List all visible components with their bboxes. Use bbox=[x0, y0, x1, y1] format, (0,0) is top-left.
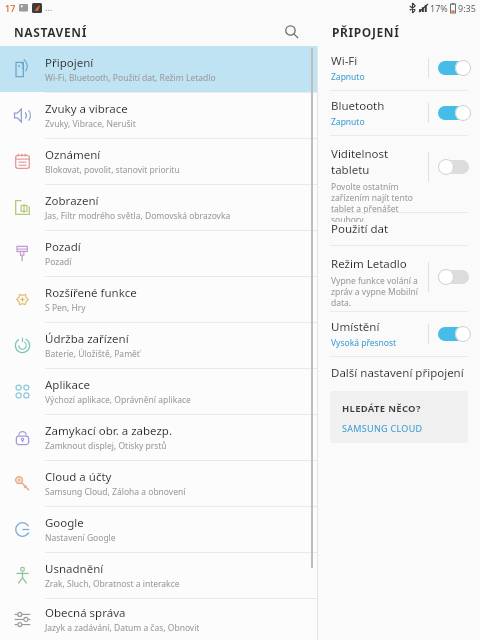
staticText: Bluetooth bbox=[331, 98, 385, 114]
staticText: 17 bbox=[5, 2, 16, 14]
staticText: Pozadí bbox=[45, 239, 81, 255]
staticText: Jazyk a zadávání, Datum a čas, Obnovit bbox=[45, 622, 200, 634]
button[interactable]: Cloud a účty bbox=[0, 460, 317, 506]
staticText: Údržba zařízení bbox=[45, 331, 129, 347]
staticText: Zapnuto bbox=[331, 71, 365, 83]
staticText: Režim Letadlo bbox=[331, 256, 407, 272]
staticText: Cloud a účty bbox=[45, 469, 112, 485]
button[interactable]: Google bbox=[0, 506, 317, 552]
staticText: Rozšířené funkce bbox=[45, 285, 137, 301]
staticText: Zamykací obr. a zabezp. bbox=[45, 423, 173, 439]
button[interactable]: Připojení bbox=[0, 46, 317, 92]
button[interactable]: Zvuky a vibrace bbox=[0, 92, 317, 138]
button[interactable]: Oznámení bbox=[0, 138, 317, 184]
staticText: NASTAVENÍ bbox=[14, 24, 87, 40]
staticText: S Pen, Hry bbox=[45, 302, 86, 314]
button[interactable]: Umístění bbox=[318, 312, 480, 356]
button[interactable]: Viditelnost tabletu bbox=[318, 136, 480, 212]
staticText: 17% bbox=[430, 2, 448, 14]
staticText: Umístění bbox=[331, 319, 380, 335]
staticText: Wi-Fi bbox=[331, 53, 358, 69]
staticText: Oznámení bbox=[45, 147, 101, 163]
staticText: Nastavení Google bbox=[45, 532, 116, 544]
button[interactable]: Zamykací obr. a zabezp. bbox=[0, 414, 317, 460]
button[interactable]: Režim Letadlo bbox=[318, 246, 480, 311]
staticText: Aplikace bbox=[45, 377, 90, 393]
staticText: Obecná správa bbox=[45, 605, 126, 621]
button[interactable]: Pozadí bbox=[0, 230, 317, 276]
staticText: Vypne funkce volání a zpráv a vypne Mobi… bbox=[331, 275, 423, 308]
button[interactable]: Další nastavení připojení bbox=[318, 357, 480, 389]
staticText: Zapnuto bbox=[331, 116, 365, 128]
button[interactable]: Wi-Fi bbox=[318, 46, 480, 90]
staticText: Viditelnost tabletu bbox=[331, 146, 423, 178]
staticText: Zvuky, Vibrace, Nerušit bbox=[45, 118, 136, 130]
staticText: Usnadnění bbox=[45, 561, 104, 577]
staticText: Další nastavení připojení bbox=[331, 365, 464, 381]
staticText: Použití dat bbox=[331, 221, 389, 237]
button[interactable]: Obecná správa bbox=[0, 598, 317, 640]
staticText: Blokovat, povolit, stanovit prioritu bbox=[45, 164, 180, 176]
staticText: Samsung Cloud, Záloha a obnovení bbox=[45, 486, 186, 498]
staticText: SAMSUNG CLOUD bbox=[342, 422, 423, 434]
staticText: Jas, Filtr modrého světla, Domovská obra… bbox=[45, 210, 231, 222]
staticText: Zvuky a vibrace bbox=[45, 101, 128, 117]
button[interactable]: Search bbox=[278, 18, 304, 44]
staticText: PŘIPOJENÍ bbox=[332, 24, 400, 40]
button[interactable]: Aplikace bbox=[0, 368, 317, 414]
staticText: Zobrazení bbox=[45, 193, 99, 209]
staticText: Vysoká přesnost bbox=[331, 337, 397, 349]
staticText: 9:35 bbox=[458, 2, 476, 14]
staticText: Zrak, Sluch, Obratnost a interakce bbox=[45, 578, 180, 590]
button[interactable]: Údržba zařízení bbox=[0, 322, 317, 368]
staticText: ... bbox=[45, 1, 53, 13]
button[interactable]: HLEDÁTE NĚCO? bbox=[330, 391, 468, 443]
button[interactable]: Usnadnění bbox=[0, 552, 317, 598]
button[interactable]: Použití dat bbox=[318, 213, 480, 245]
staticText: Zamknout displej, Otisky prstů bbox=[45, 440, 167, 452]
button[interactable]: Bluetooth bbox=[318, 91, 480, 135]
staticText: Připojení bbox=[45, 55, 94, 71]
staticText: Google bbox=[45, 515, 84, 531]
staticText: Výchozí aplikace, Oprávnění aplikace bbox=[45, 394, 191, 406]
staticText: Baterie, Úložiště, Paměť bbox=[45, 348, 140, 360]
staticText: Povolte ostatním zařízením najít tento t… bbox=[331, 181, 423, 222]
staticText: Wi-Fi, Bluetooth, Použití dat, Režim Let… bbox=[45, 72, 216, 84]
staticText: Pozadí bbox=[45, 256, 72, 268]
button[interactable]: Rozšířené funkce bbox=[0, 276, 317, 322]
button[interactable]: Zobrazení bbox=[0, 184, 317, 230]
staticText: HLEDÁTE NĚCO? bbox=[342, 402, 421, 415]
